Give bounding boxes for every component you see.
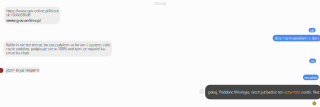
button[interactable]: https://www.gov-online.pl/klient: [4, 7, 60, 24]
staticText: www.gov-online.pl: [6, 17, 41, 23]
staticText: pokaj, Podobne Mlonigia, niech jut badzi…: [208, 89, 284, 95]
staticText: dc=5b0a586d8: [6, 12, 30, 17]
button[interactable]: Kalibrin nie ten temat, bo zaczudylem w …: [3, 41, 112, 56]
staticText: https://www.gov-online.pl/klient: [6, 8, 58, 13]
button[interactable]: no wlas: [303, 75, 319, 80]
staticText: no: [311, 58, 315, 63]
button[interactable]: no: [309, 59, 316, 63]
staticText: ok: [310, 27, 314, 33]
staticText: ZUS/PZU: [284, 89, 300, 95]
button[interactable]: jest: [4, 67, 40, 73]
button[interactable]: dzis rozmawialam z dora: [273, 35, 320, 41]
staticText: to juz nieparit: [16, 67, 39, 73]
staticText: Kalibrin nie ten temat, bo zaczudylem w …: [6, 42, 110, 47]
staticText: zostki. Nat: [300, 89, 319, 95]
button[interactable]: Status: [313, 102, 316, 105]
staticText: dzis rozmawialam z dora: [274, 35, 319, 41]
staticText: no wlas: [304, 75, 317, 80]
staticText: razie stabilna, podpisuje sie w 100% and…: [6, 46, 105, 51]
button[interactable]: pokaj, Podobne Mlonigia, niech jut badzi…: [205, 85, 320, 99]
button[interactable]: ok: [309, 28, 316, 32]
staticText: zmorku chyb: [6, 50, 29, 55]
staticText: Dzisiaj: [154, 0, 166, 6]
staticText: jest: [6, 67, 12, 73]
